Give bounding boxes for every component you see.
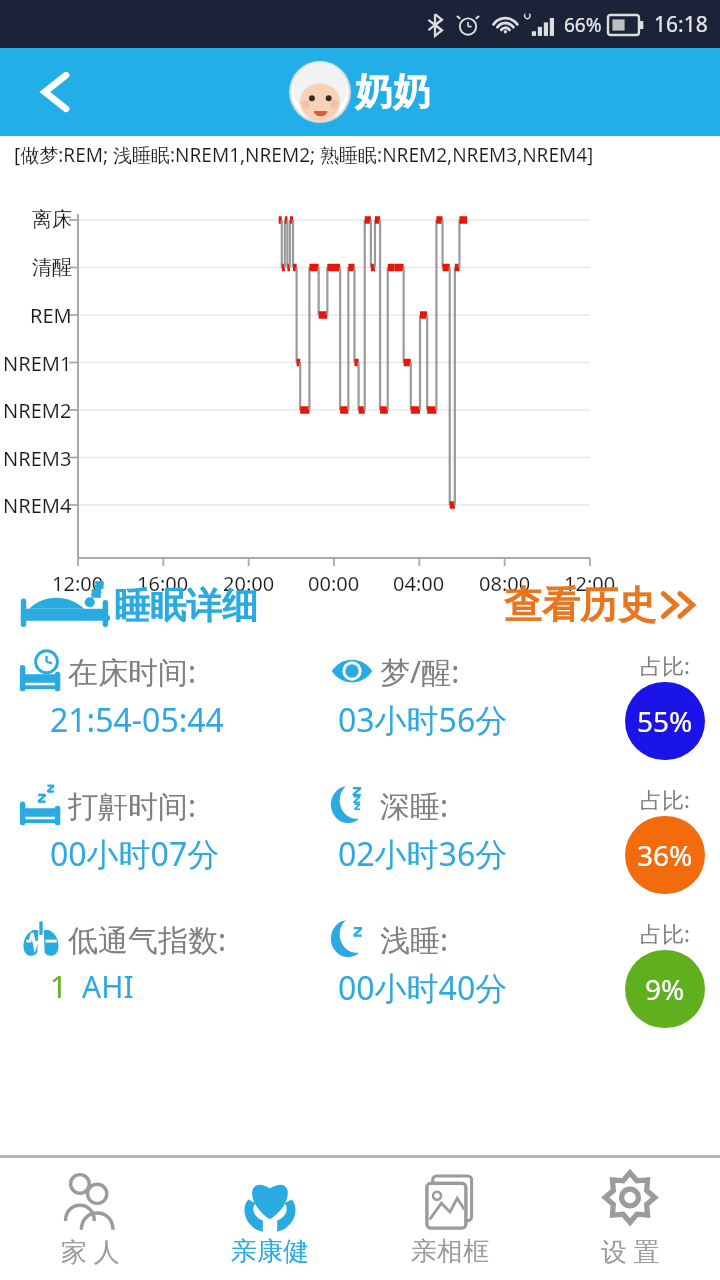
button[interactable]: 深睡: [330,784,610,876]
staticText: 奶奶 [355,68,431,116]
button[interactable]: 打鼾时间: [18,784,330,876]
button[interactable]: 在床时间: [18,650,330,742]
staticText: 在床时间: [68,651,197,692]
button[interactable]: 9% [625,950,705,1028]
button[interactable]: 查看历史 [504,581,702,629]
staticText: 设 置 [601,1233,660,1269]
staticText: 04:00 [393,570,445,597]
button[interactable]: 36% [625,816,705,894]
staticText: 36% [637,836,693,874]
staticText: 00小时40分 [338,966,508,1010]
staticText: 00:00 [308,570,360,597]
staticText: 睡眠详细 [114,583,258,628]
button[interactable]: 家 人 [0,1158,180,1280]
button[interactable]: 梦/醒: [330,650,610,742]
button[interactable]: 亲康健 [180,1158,360,1280]
staticText: 20:00 [223,570,275,597]
button[interactable]: 55% [625,682,705,760]
button[interactable]: 设 置 [540,1158,720,1280]
staticText: 占比: [640,784,690,814]
staticText: 占比: [640,650,690,680]
staticText: 浅睡: [380,919,449,960]
staticText: 12:00 [52,570,104,597]
staticText: 占比: [640,918,690,948]
staticText: 离床 [32,207,72,232]
staticText: 梦/醒: [380,651,460,692]
staticText: 打鼾时间: [68,785,197,826]
staticText: 66% [564,12,602,38]
staticText: 清醒 [32,255,72,280]
staticText: 深睡: [380,785,449,826]
staticText: 16:18 [654,10,708,39]
staticText: REM [30,302,72,329]
staticText: AHI [82,966,134,1007]
staticText: 55% [637,702,693,740]
staticText: 16:00 [137,570,189,597]
staticText: 低通气指数: [68,919,227,960]
button[interactable]: 低通气指数: [18,918,330,1007]
staticText: 1 [50,966,68,1007]
staticText: 02小时36分 [338,832,508,876]
staticText: 12:00 [564,570,616,597]
staticText: 查看历史 [504,581,656,629]
button[interactable]: 浅睡: [330,918,610,1010]
staticText: 21:54-05:44 [50,698,224,742]
staticText: NREM1 [3,350,72,377]
staticText: NREM4 [3,492,72,519]
staticText: 亲相框 [411,1235,489,1268]
button[interactable]: Back [28,64,84,120]
button[interactable]: 睡眠详细 [18,582,258,628]
staticText: [做梦:REM; 浅睡眠:NREM1,NREM2; 熟睡眠:NREM2,NREM… [14,142,594,168]
staticText: NREM3 [3,445,72,472]
staticText: 9% [645,970,685,1008]
staticText: 03小时56分 [338,698,508,742]
staticText: 08:00 [479,570,531,597]
staticText: 亲康健 [231,1235,309,1268]
button[interactable]: 亲相框 [360,1158,540,1280]
staticText: 00小时07分 [50,832,220,876]
staticText: NREM2 [3,397,72,424]
staticText: 家 人 [61,1233,120,1269]
